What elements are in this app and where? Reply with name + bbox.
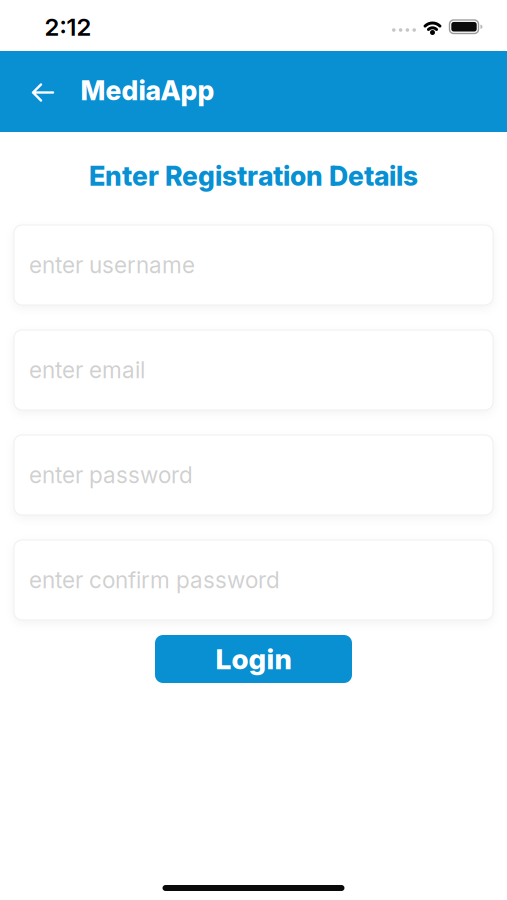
- staticText: enter confirm password: [29, 566, 280, 594]
- staticText: enter email: [29, 356, 145, 384]
- button[interactable]: Login: [155, 635, 352, 683]
- staticText: enter password: [29, 461, 193, 489]
- staticText: 2:12: [44, 12, 91, 41]
- button[interactable]: Back: [20, 72, 64, 112]
- staticText: Login: [215, 642, 291, 676]
- button[interactable]: enter email: [14, 330, 493, 410]
- button[interactable]: enter password: [14, 435, 493, 515]
- staticText: MediaApp: [80, 74, 214, 107]
- button[interactable]: enter username: [14, 225, 493, 305]
- staticText: Enter Registration Details: [89, 160, 418, 192]
- staticText: enter username: [29, 251, 195, 279]
- button[interactable]: enter confirm password: [14, 540, 493, 620]
